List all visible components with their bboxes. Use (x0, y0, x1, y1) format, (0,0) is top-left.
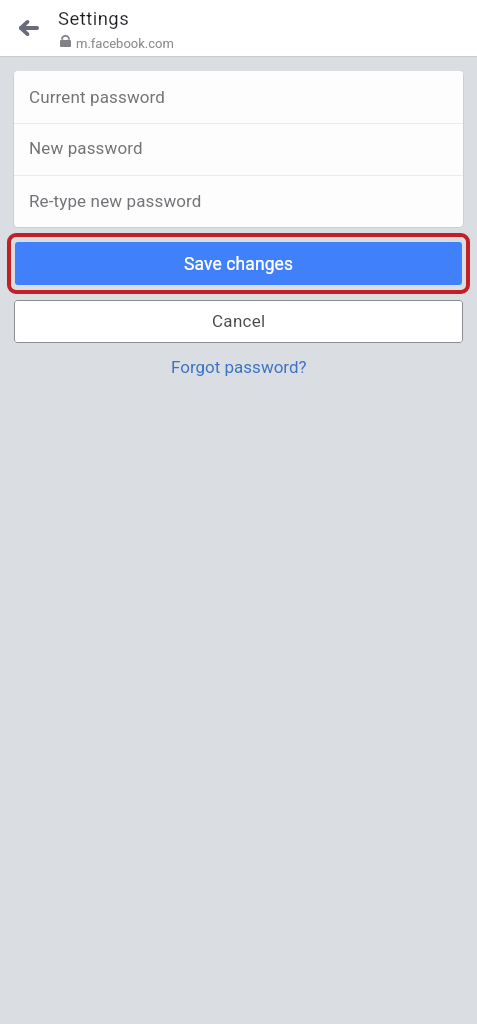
staticText: Save changes (184, 254, 294, 275)
button[interactable]: Current password (14, 71, 463, 123)
staticText: Cancel (212, 311, 266, 331)
staticText: Current password (29, 87, 166, 107)
button[interactable]: New password (14, 124, 463, 175)
staticText: New password (29, 138, 143, 158)
staticText: Re-type new password (29, 191, 202, 211)
staticText: Settings (58, 8, 130, 30)
button[interactable]: Back (0, 0, 58, 57)
button[interactable]: Cancel (14, 300, 463, 343)
staticText: Forgot password? (171, 357, 307, 377)
staticText: m.facebook.com (76, 36, 174, 51)
button[interactable]: Forgot password? (163, 354, 315, 380)
button[interactable]: Re-type new password (14, 176, 463, 227)
button[interactable]: Save changes (15, 242, 462, 285)
